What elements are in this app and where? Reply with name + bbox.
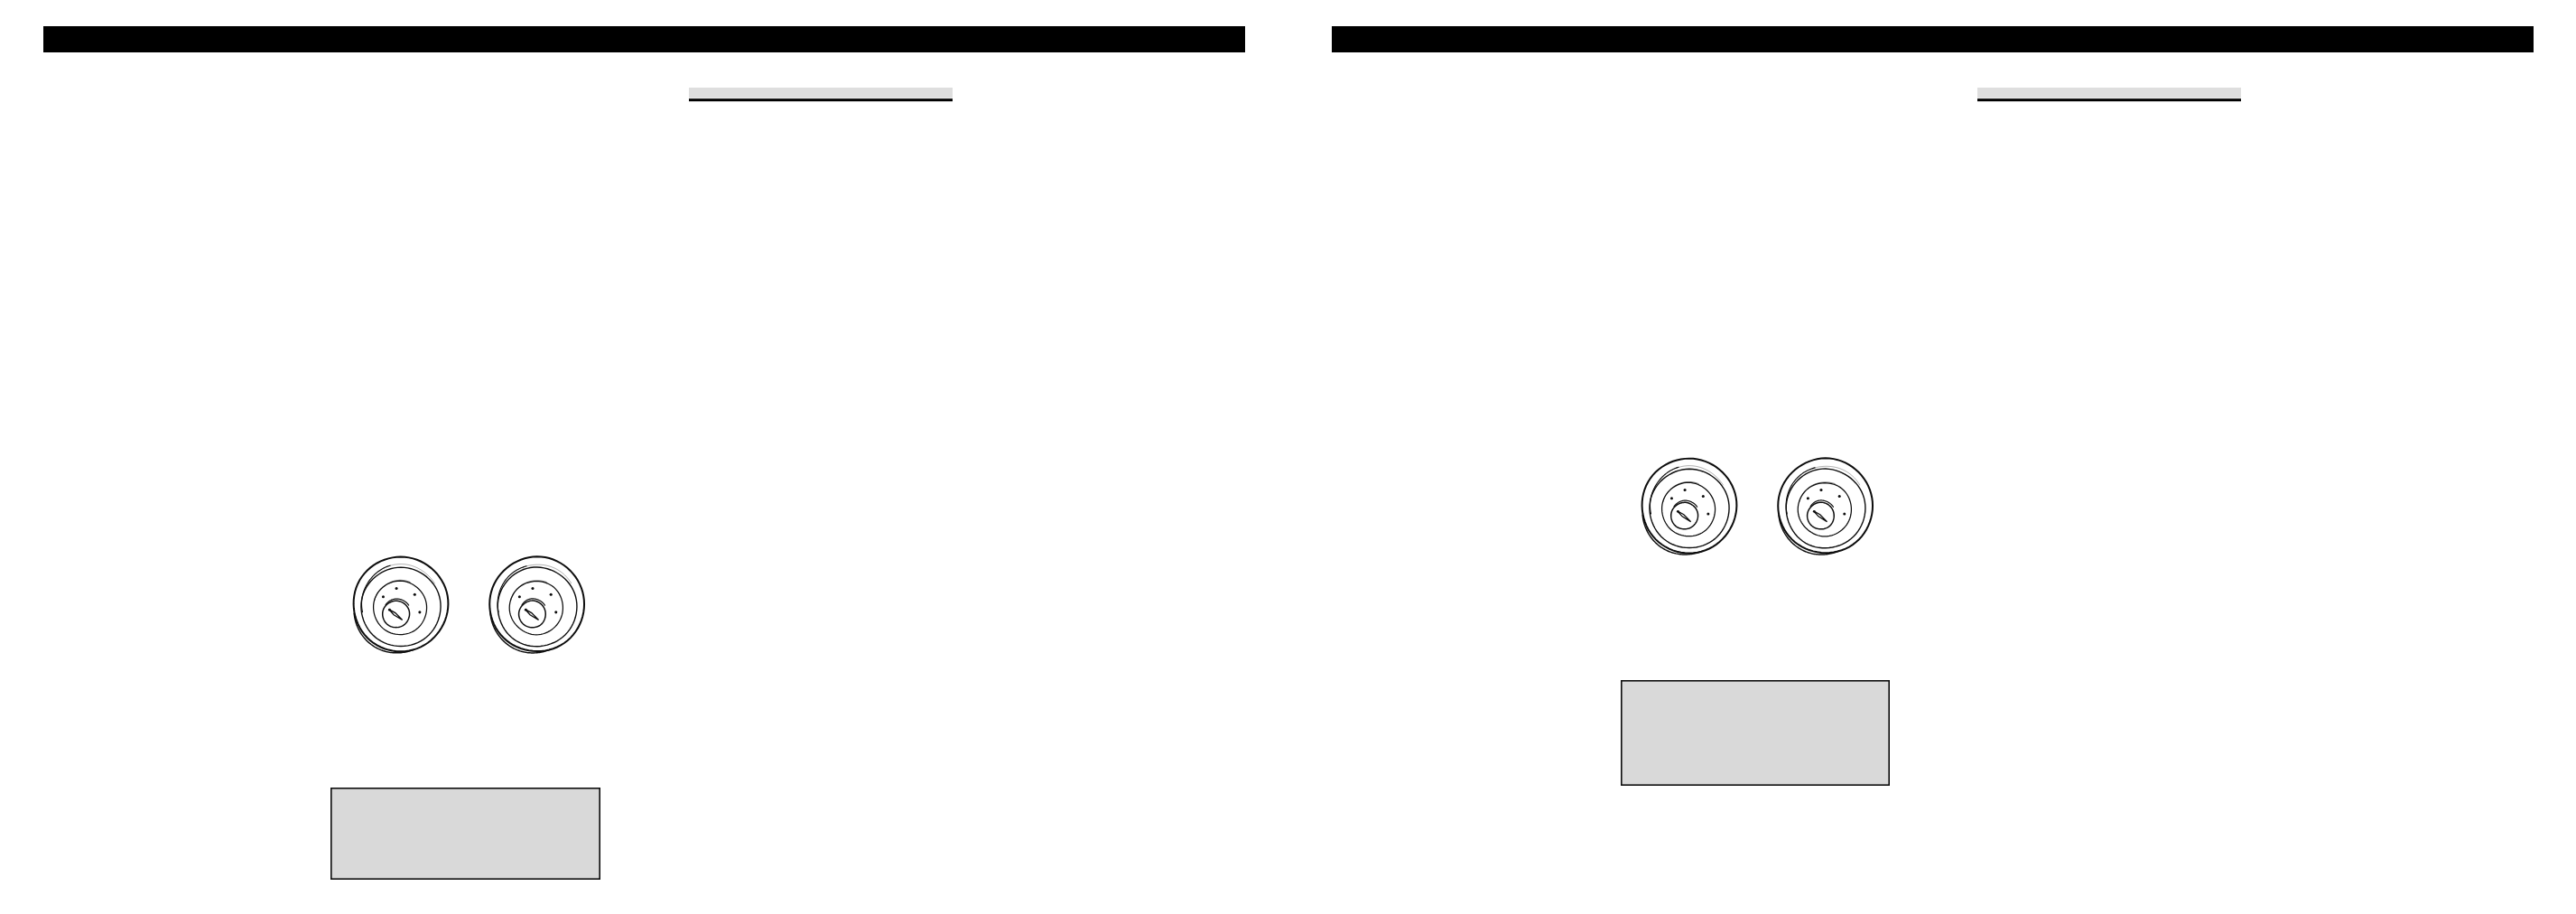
button[interactable]: App bar <box>1332 26 2534 52</box>
button[interactable]: Title <box>689 88 953 101</box>
button[interactable]: Card <box>1621 680 1890 786</box>
button[interactable]: App bar <box>43 26 1245 52</box>
button[interactable]: Title <box>1977 88 2241 101</box>
button[interactable]: Card <box>330 788 600 880</box>
button[interactable]: Dial two <box>486 554 588 656</box>
button[interactable]: Dial one <box>1638 455 1740 557</box>
button[interactable]: Dial one <box>349 554 451 656</box>
button[interactable]: Dial two <box>1774 455 1876 557</box>
